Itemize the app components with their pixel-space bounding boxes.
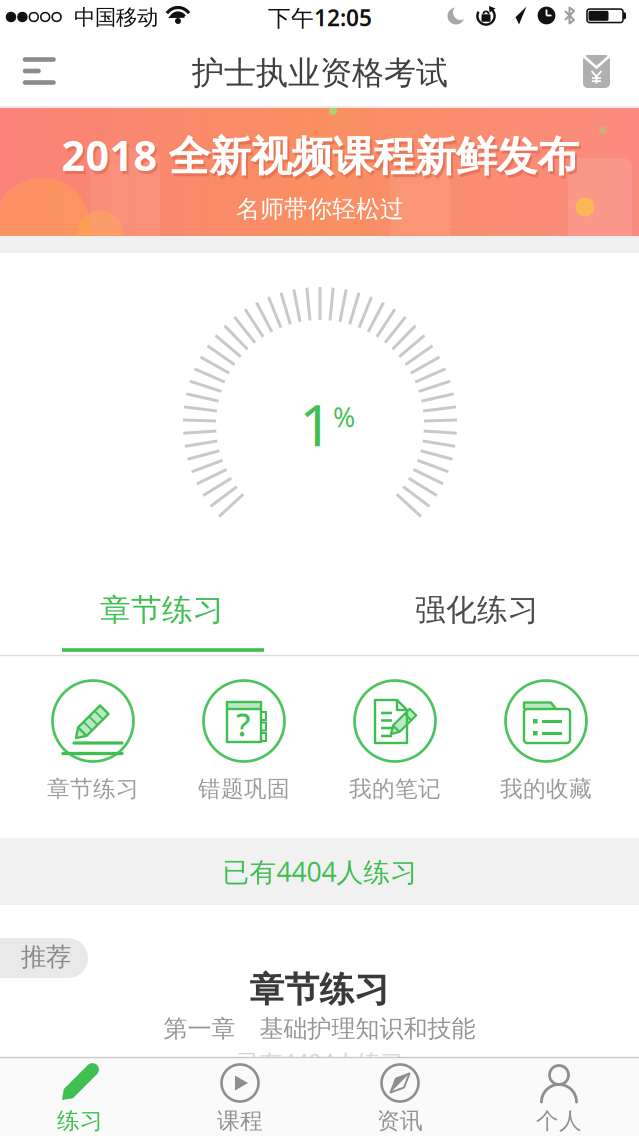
button[interactable]: 2018 全新视频课程新鲜发布 bbox=[0, 108, 639, 236]
button[interactable]: 练习 bbox=[0, 1057, 160, 1136]
button[interactable]: 红包 bbox=[583, 55, 610, 88]
button[interactable]: 章节练习 bbox=[2, 579, 321, 641]
staticText: 下午12:05 bbox=[268, 2, 372, 32]
staticText: 我的收藏 bbox=[500, 775, 592, 803]
staticText: 练习 bbox=[57, 1107, 103, 1135]
staticText: 错题巩固 bbox=[198, 775, 290, 803]
staticText: 2018 全新视频课程新鲜发布 bbox=[63, 131, 580, 185]
staticText: 推荐 bbox=[21, 941, 71, 972]
staticText: 我的笔记 bbox=[349, 775, 441, 803]
button[interactable]: 个人 bbox=[479, 1057, 639, 1136]
staticText: 章节练习 bbox=[249, 968, 389, 1011]
staticText: 课程 bbox=[217, 1107, 263, 1135]
staticText: 已有4404人练习 bbox=[236, 1047, 403, 1077]
staticText: 章节练习 bbox=[100, 591, 224, 629]
staticText: 强化练习 bbox=[415, 591, 539, 629]
button[interactable]: ? bbox=[168, 656, 319, 820]
staticText: 名师带你轻松过 bbox=[236, 194, 404, 224]
button[interactable]: 课程 bbox=[160, 1057, 320, 1136]
staticText: 已有4404人练习 bbox=[222, 854, 417, 889]
button[interactable]: 我的收藏 bbox=[470, 656, 621, 820]
button[interactable]: 菜单 bbox=[11, 43, 67, 99]
staticText: % bbox=[333, 399, 355, 435]
staticText: 2018 全新视频课程新鲜发布 bbox=[61, 128, 578, 182]
button[interactable]: 资讯 bbox=[320, 1057, 480, 1136]
staticText: 第一章 基础护理知识和技能 bbox=[163, 1014, 475, 1044]
button[interactable]: 我的笔记 bbox=[319, 656, 470, 820]
staticText: 护士执业资格考试 bbox=[192, 53, 448, 93]
staticText: 个人 bbox=[536, 1107, 582, 1135]
staticText: 资讯 bbox=[377, 1107, 423, 1135]
staticText: 章节练习 bbox=[47, 775, 139, 803]
staticText: ? bbox=[236, 703, 250, 745]
button[interactable]: 章节练习 bbox=[0, 958, 639, 1054]
staticText: 1 bbox=[299, 386, 332, 462]
button[interactable]: 章节练习 bbox=[17, 656, 168, 820]
button[interactable]: 强化练习 bbox=[317, 579, 636, 641]
staticText: 中国移动 bbox=[74, 4, 158, 31]
